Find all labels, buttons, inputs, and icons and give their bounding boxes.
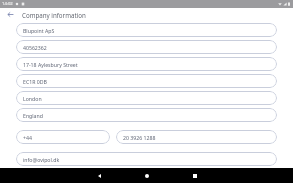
staticText: 17-18 Aylesbury Street <box>23 61 78 68</box>
staticText: 14:02 <box>2 1 13 7</box>
button[interactable]: Back <box>4 8 17 21</box>
button[interactable]: London <box>16 91 277 105</box>
button[interactable]: Blupoint ApS <box>16 23 277 37</box>
button[interactable]: 17-18 Aylesbury Street <box>16 57 277 71</box>
button[interactable]: EC1R 0DB <box>16 74 277 88</box>
staticText: EC1R 0DB <box>23 78 47 85</box>
button[interactable]: Back <box>86 168 112 183</box>
staticText: info@ovipol.dk <box>23 156 60 163</box>
button[interactable]: 20 3926 1288 <box>116 130 277 144</box>
staticText: London <box>23 95 42 102</box>
staticText: England <box>23 112 43 119</box>
button[interactable]: info@ovipol.dk <box>16 152 277 166</box>
button[interactable]: 40562362 <box>16 40 277 54</box>
staticText: 40562362 <box>23 44 47 51</box>
button[interactable]: England <box>16 108 277 122</box>
button[interactable]: Home <box>134 168 160 183</box>
staticText: 20 3926 1288 <box>123 134 156 141</box>
button[interactable]: Recent apps <box>182 168 208 183</box>
button[interactable]: +44 <box>16 130 110 144</box>
staticText: Blupoint ApS <box>23 27 55 34</box>
staticText: +44 <box>23 134 32 141</box>
staticText: Company information <box>22 11 86 19</box>
